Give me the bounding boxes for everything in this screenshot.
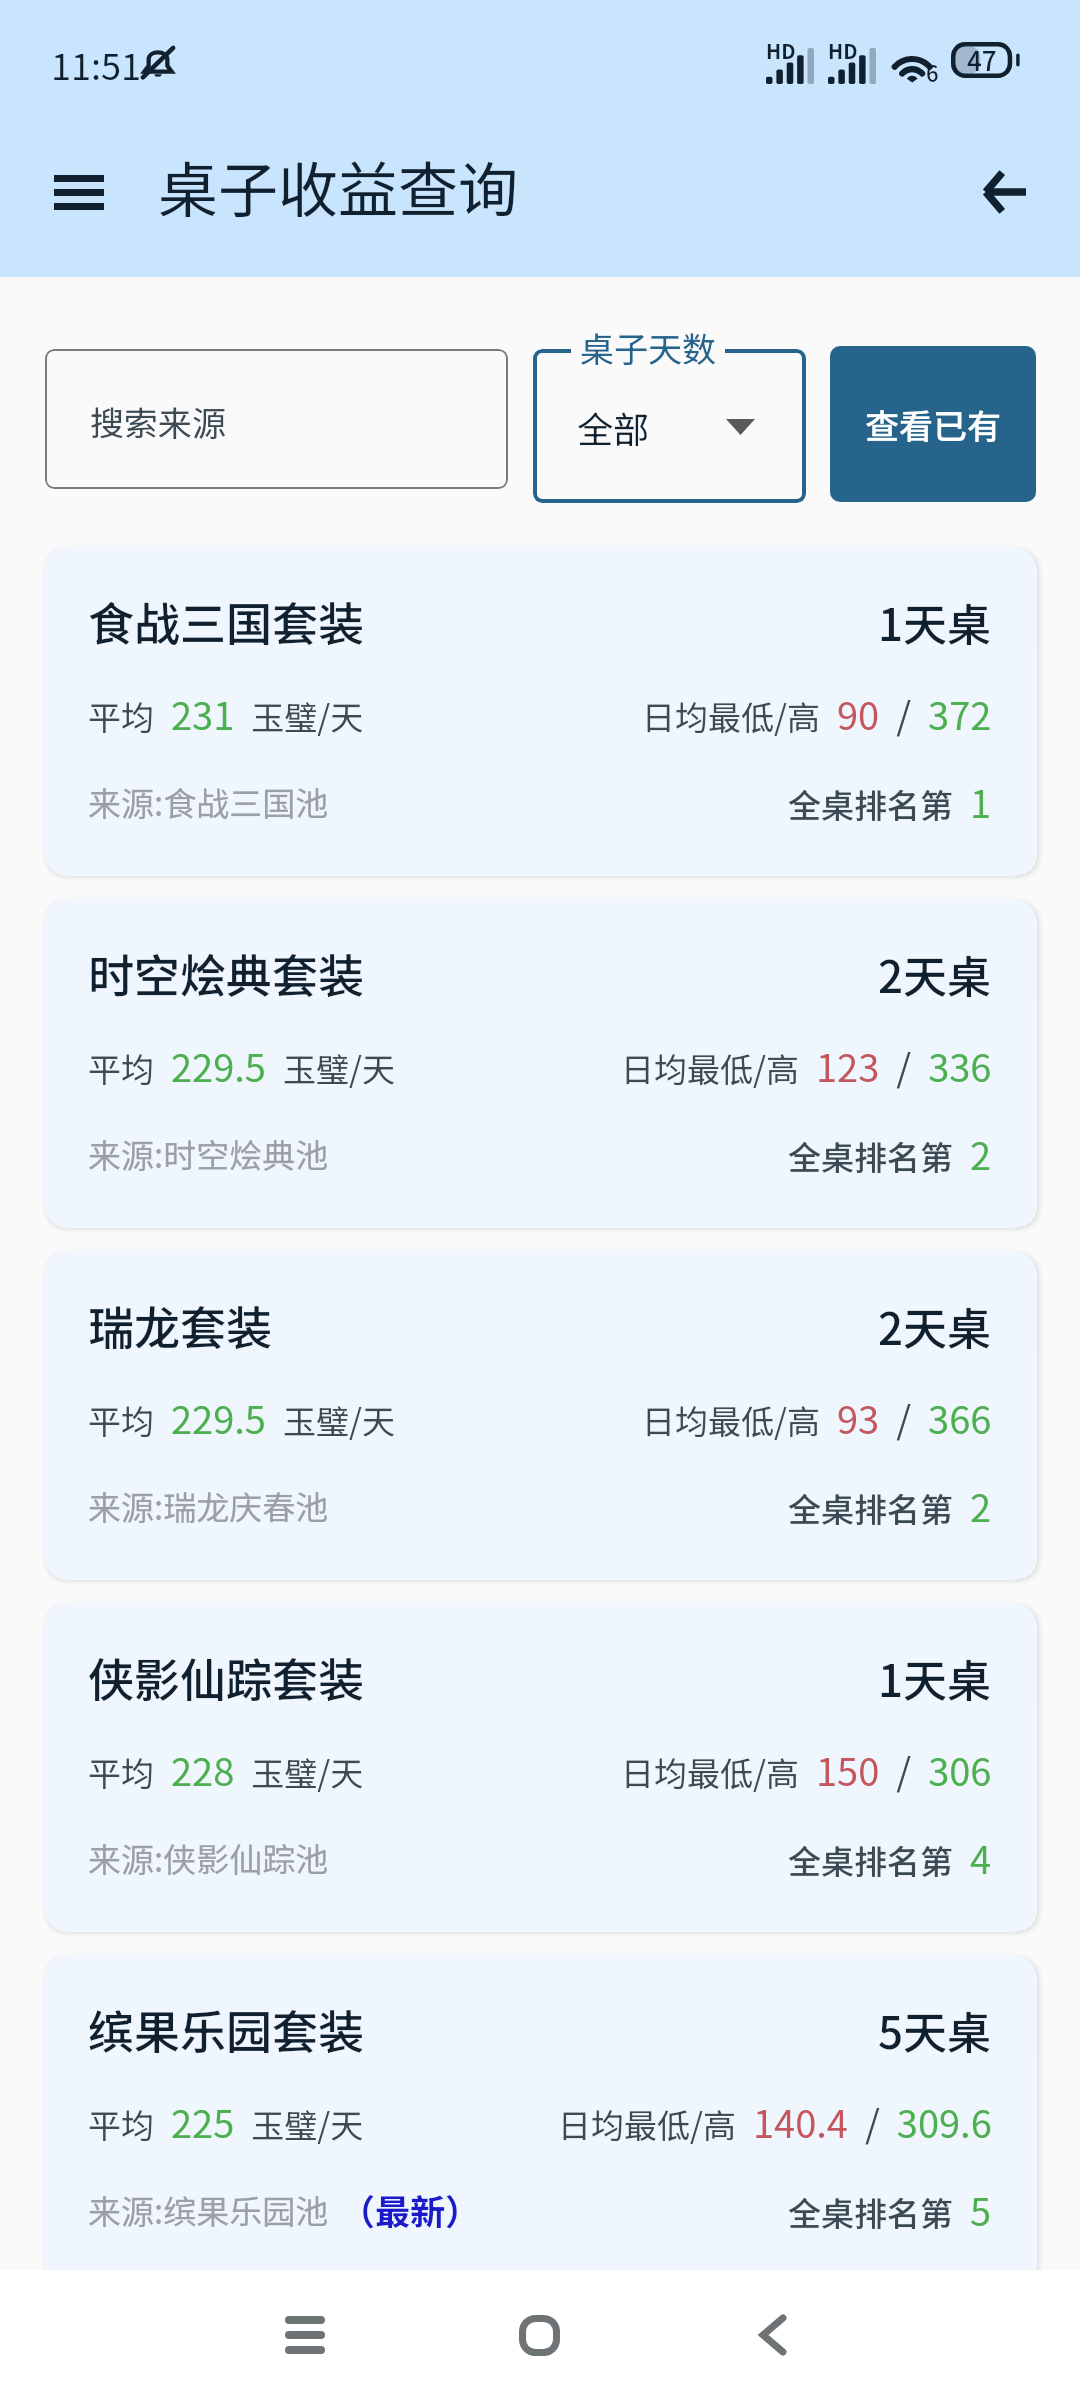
staticText: 平均 229.5 玉璧/天 [88, 1390, 395, 1445]
staticText: 2天桌 [878, 1294, 992, 1358]
staticText: 全桌排名第 1 [788, 774, 992, 829]
staticText: 47 [967, 41, 997, 79]
staticText: 6 [926, 56, 939, 88]
staticText: 来源:侠影仙踪池 [88, 1834, 329, 1882]
staticText: 日均最低/高 140.4 / 309.6 [558, 2094, 992, 2149]
staticText: 日均最低/高 150 / 306 [621, 1742, 992, 1797]
button[interactable]: 侠影仙踪套装 [44, 1602, 1036, 1932]
button[interactable]: 缤果乐园套装 [44, 1954, 1036, 2284]
button[interactable]: Recent apps [249, 2270, 361, 2400]
button[interactable]: 搜索来源 [45, 349, 508, 489]
staticText: 日均最低/高 93 / 366 [642, 1390, 992, 1445]
staticText: 来源:缤果乐园池 [88, 2186, 329, 2234]
staticText: 日均最低/高 90 / 372 [642, 686, 992, 741]
staticText: 全桌排名第 2 [788, 1478, 992, 1533]
button[interactable]: 查看已有 [830, 346, 1036, 502]
staticText: 时空烩典套装 [88, 940, 364, 1007]
staticText: 查看已有 [865, 400, 1001, 449]
staticText: 1天桌 [878, 1646, 992, 1710]
staticText: 平均 225 玉璧/天 [88, 2094, 364, 2149]
staticText: 缤果乐园套装 [88, 1996, 364, 2063]
staticText: 侠影仙踪套装 [88, 1644, 364, 1711]
button[interactable]: 食战三国套装 [44, 546, 1036, 876]
button[interactable]: Back [717, 2270, 829, 2400]
staticText: HD [766, 36, 796, 65]
button[interactable]: 时空烩典套装 [44, 898, 1036, 1228]
staticText: HD [828, 36, 858, 65]
button[interactable]: Home [483, 2270, 595, 2400]
staticText: 全部 [577, 401, 650, 453]
staticText: 1天桌 [878, 590, 992, 654]
staticText: 日均最低/高 123 / 336 [621, 1038, 992, 1093]
staticText: 来源:时空烩典池 [88, 1130, 329, 1178]
staticText: 桌子收益查询 [158, 142, 518, 229]
staticText: 来源:瑞龙庆春池 [88, 1482, 329, 1530]
staticText: 5天桌 [878, 1998, 992, 2062]
button[interactable]: Back [952, 140, 1056, 244]
staticText: 瑞龙套装 [88, 1292, 272, 1359]
staticText: 全桌排名第 4 [788, 1830, 992, 1885]
staticText: 2天桌 [878, 942, 992, 1006]
staticText: 搜索来源 [90, 397, 226, 446]
staticText: 全桌排名第 5 [788, 2182, 992, 2237]
staticText: 平均 228 玉璧/天 [88, 1742, 364, 1797]
staticText: 平均 229.5 玉璧/天 [88, 1038, 395, 1093]
staticText: （最新） [340, 2184, 481, 2235]
staticText: 平均 231 玉璧/天 [88, 686, 364, 741]
staticText: 来源:食战三国池 [88, 778, 329, 826]
staticText: 桌子天数 [580, 323, 716, 372]
staticText: 11:51 [51, 38, 141, 90]
button[interactable]: 全部 [533, 349, 806, 503]
staticText: 全桌排名第 2 [788, 1126, 992, 1181]
button[interactable]: 瑞龙套装 [44, 1250, 1036, 1580]
staticText: 食战三国套装 [88, 588, 364, 655]
button[interactable]: Menu [27, 140, 131, 244]
